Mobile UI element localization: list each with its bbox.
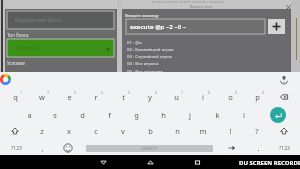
staticText: 02 : Ближайший игрок (127, 46, 174, 52)
staticText: 04 : Все игроки (127, 60, 159, 66)
button[interactable]: w (29, 89, 55, 105)
button[interactable]: Enter (270, 107, 286, 123)
staticText: Условие (7, 60, 25, 66)
button[interactable]: 03 : Случайный игрок (122, 52, 291, 59)
button[interactable]: Shift (271, 123, 297, 139)
staticText: v (121, 126, 125, 136)
staticText: m (199, 126, 207, 136)
button[interactable]: 04 : Все игроки (122, 59, 291, 66)
button[interactable]: u (163, 89, 189, 105)
staticText: execute @p ~2 ~0 ~ (130, 23, 187, 31)
staticText: s (53, 110, 57, 120)
staticText: Введите команду (125, 13, 159, 18)
button[interactable]: r (83, 89, 109, 105)
button[interactable]: ! (217, 123, 243, 139)
staticText: Обычный (15, 45, 39, 52)
button[interactable]: d (69, 107, 95, 123)
button[interactable]: i (190, 89, 216, 105)
staticText: d (80, 110, 85, 120)
button[interactable]: q (2, 89, 28, 105)
button[interactable]: Обычный (7, 39, 114, 57)
staticText: h (161, 110, 166, 120)
staticText: Lorem ipsum dolor sit amet consectetur a… (152, 0, 224, 4)
staticText: ?123 (279, 145, 290, 152)
staticText: o (228, 92, 233, 102)
staticText: u (174, 92, 179, 102)
staticText: t (122, 92, 125, 102)
staticText: 01 : @a (127, 39, 142, 45)
button[interactable]: x (56, 123, 82, 139)
staticText: z (40, 126, 44, 136)
staticText: i (202, 92, 204, 102)
staticText: 6 (155, 90, 158, 95)
button[interactable]: Add command (268, 19, 285, 34)
button[interactable]: Back (96, 155, 110, 169)
button[interactable]: Emoji (55, 140, 81, 156)
button[interactable]: Backspace (271, 89, 297, 105)
staticText: 03 : Случайный игрок (127, 53, 173, 59)
staticText: g (134, 110, 139, 120)
staticText: 9 (235, 90, 238, 95)
button[interactable]: s (42, 107, 68, 123)
button[interactable]: v (110, 123, 136, 139)
staticText: f (108, 110, 111, 120)
staticText: q (13, 92, 18, 102)
button[interactable]: 02 : Ближайший игрок (122, 45, 291, 52)
button[interactable]: z (29, 123, 55, 139)
staticText: 5 (128, 90, 131, 95)
staticText: y (148, 92, 152, 102)
button[interactable]: y (137, 89, 163, 105)
button[interactable]: , (29, 140, 55, 156)
button[interactable]: Voice input (278, 73, 290, 85)
button[interactable]: n (164, 123, 190, 139)
button[interactable]: o (217, 89, 243, 105)
button[interactable]: Tab (219, 140, 245, 156)
staticText: w (39, 92, 45, 102)
button[interactable]: 01 : @a (122, 38, 291, 45)
staticText: , (41, 143, 44, 153)
button[interactable]: f (96, 107, 122, 123)
button[interactable]: k (204, 107, 230, 123)
button[interactable]: Shift (2, 123, 28, 139)
staticText: 4 (101, 90, 104, 95)
staticText: DU SCREEN RECORDER (239, 159, 300, 167)
button[interactable]: Recents (190, 155, 204, 169)
button[interactable]: 05 : Все существа (122, 67, 291, 74)
button[interactable]: ?123 (271, 140, 297, 156)
staticText: 3 (74, 90, 77, 95)
button[interactable]: . (245, 140, 271, 156)
staticText: 8 (208, 90, 211, 95)
button[interactable]: Введите имя бокса (7, 11, 114, 29)
staticText: b (148, 126, 153, 136)
button[interactable]: a (16, 107, 42, 123)
button[interactable]: c (83, 123, 109, 139)
button[interactable]: ?123 (3, 140, 29, 156)
staticText: p (255, 92, 260, 102)
button[interactable]: h (150, 107, 176, 123)
button[interactable]: Close (284, 3, 293, 12)
staticText: e (67, 92, 72, 102)
staticText: r (94, 92, 98, 102)
button[interactable]: ? (244, 123, 270, 139)
button[interactable]: Home (143, 155, 157, 169)
button[interactable]: execute @p ~2 ~0 ~ (126, 19, 265, 34)
button[interactable]: m (190, 123, 216, 139)
button[interactable]: p (244, 89, 270, 105)
button[interactable]: j (177, 107, 203, 123)
staticText: Введите имя (190, 4, 212, 9)
staticText: c (94, 126, 98, 136)
staticText: 05 : Все существа (127, 68, 164, 74)
staticText: j (189, 110, 191, 120)
button[interactable]: t (110, 89, 136, 105)
button[interactable]: l (231, 107, 257, 123)
button[interactable]: g (123, 107, 149, 123)
button[interactable]: QWERTY (86, 145, 213, 152)
staticText: . (257, 143, 260, 153)
staticText: ?123 (11, 145, 22, 152)
staticText: QWERTY (141, 146, 158, 151)
button[interactable]: e (56, 89, 82, 105)
button[interactable]: b (137, 123, 163, 139)
staticText: ? (255, 126, 259, 136)
staticText: ! (229, 126, 232, 136)
staticText: 2 (47, 90, 50, 95)
